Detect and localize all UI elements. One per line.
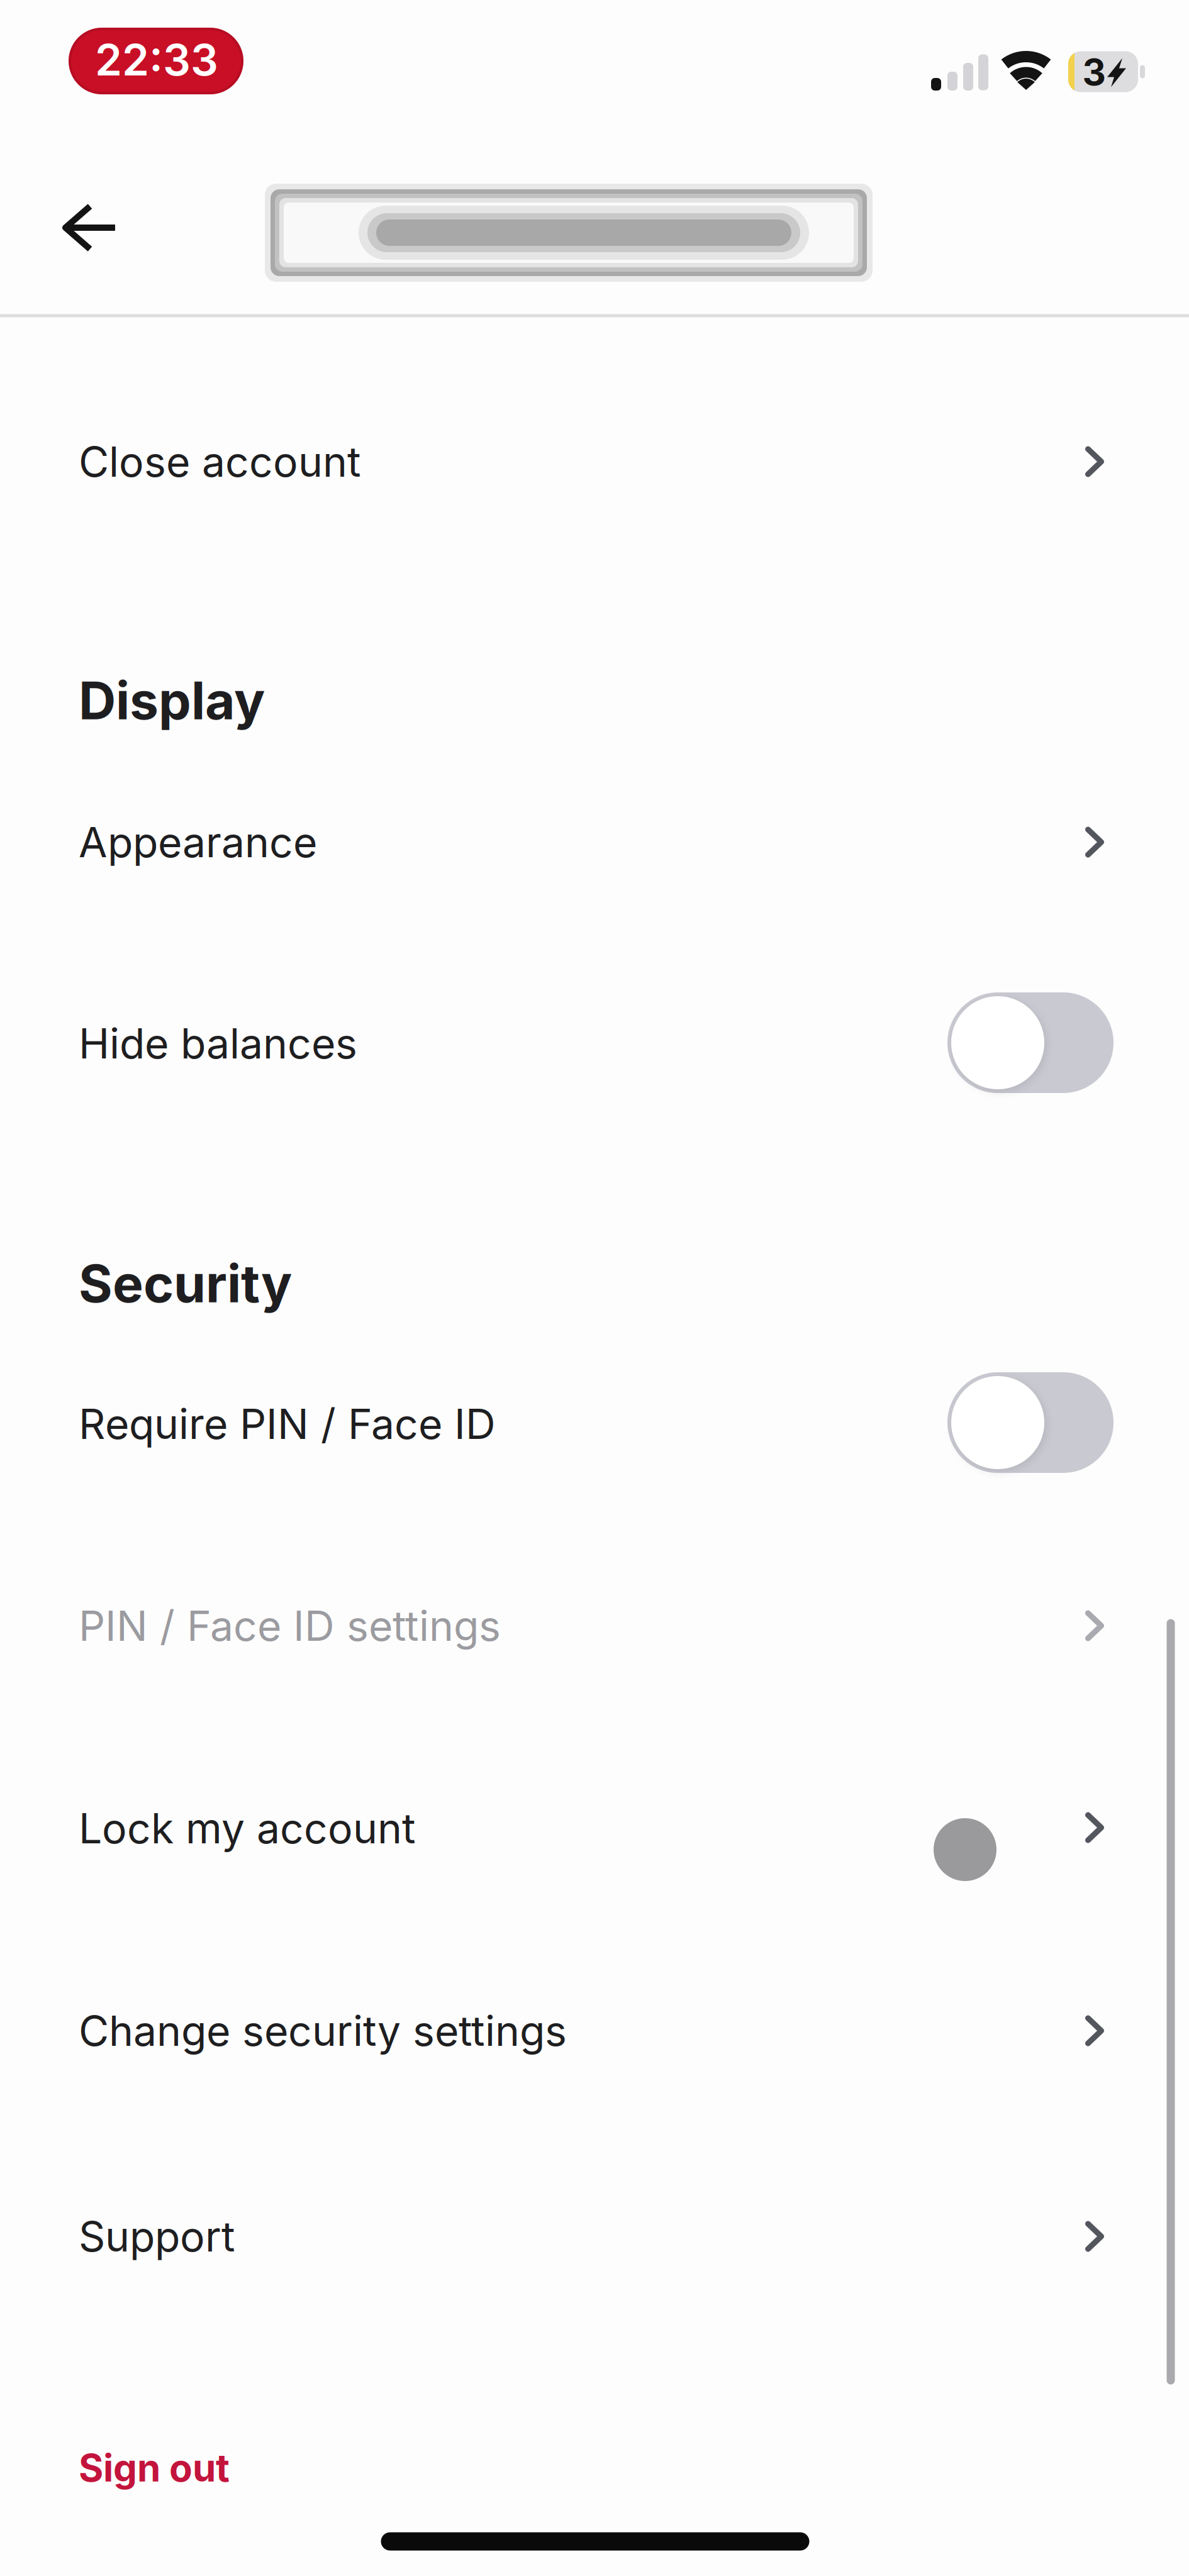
staticText: Appearance [79,817,317,867]
staticText: Change security settings [79,2006,567,2056]
staticText: Hide balances [79,1018,357,1069]
staticText: 3 [1082,50,1106,94]
staticText: Support [79,2211,235,2262]
staticText: Lock my account [79,1803,416,1853]
staticText: 22:33 [95,34,218,86]
staticText: Close account [79,437,361,487]
staticText: Display [79,669,265,732]
staticText: Sign out [79,2445,230,2491]
staticText: PIN / Face ID settings [79,1601,501,1651]
staticText: Require PIN / Face ID [79,1399,496,1449]
staticText: Security [79,1252,292,1315]
